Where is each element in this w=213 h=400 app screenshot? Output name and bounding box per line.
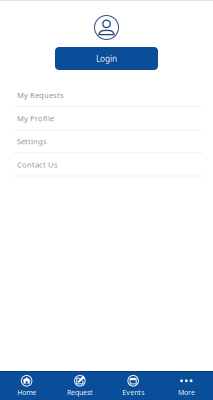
staticText: Events <box>122 387 144 397</box>
button[interactable]: More <box>160 371 213 400</box>
button[interactable]: Contact Us <box>0 153 213 176</box>
button[interactable]: Settings <box>0 130 213 153</box>
button[interactable]: Home <box>0 371 53 400</box>
button[interactable]: Login <box>55 47 158 70</box>
staticText: Request <box>67 387 93 397</box>
staticText: My Profile <box>17 113 54 123</box>
button[interactable]: My Profile <box>0 107 213 130</box>
staticText: Home <box>17 387 36 397</box>
staticText: Contact Us <box>17 159 58 170</box>
button[interactable]: Events <box>106 371 160 400</box>
button[interactable]: My Requests <box>0 84 213 107</box>
staticText: More <box>178 387 195 397</box>
button[interactable]: Request <box>53 371 106 400</box>
staticText: Settings <box>17 136 47 147</box>
staticText: My Requests <box>17 90 64 100</box>
staticText: Login <box>96 53 117 64</box>
